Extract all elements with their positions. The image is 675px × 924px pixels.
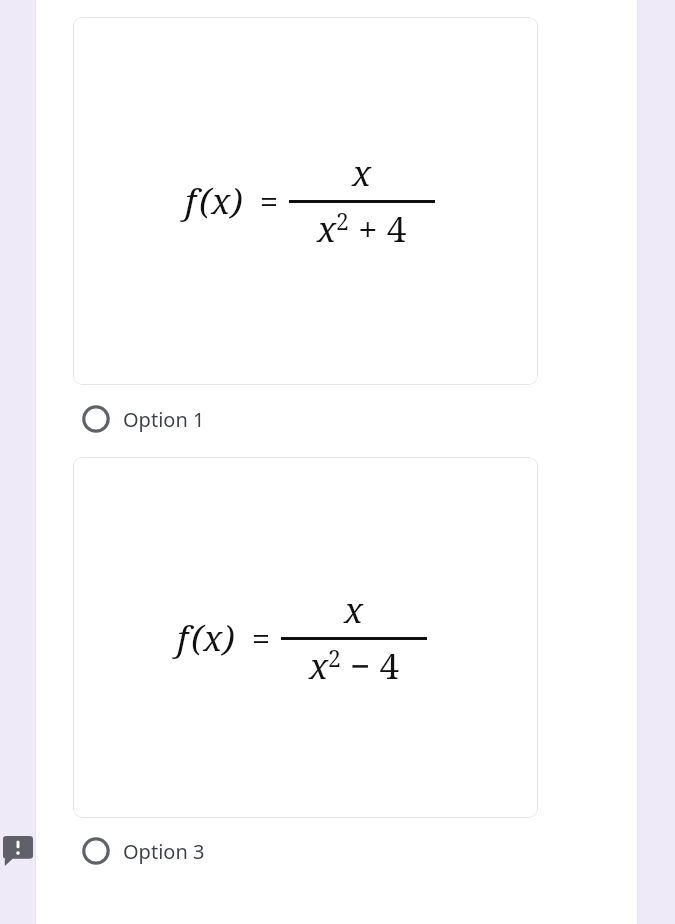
button[interactable]: Option 3 bbox=[36, 824, 675, 878]
other: Add comment bbox=[3, 836, 33, 866]
staticText: x bbox=[344, 586, 364, 634]
staticText: x2 + 4 bbox=[317, 205, 407, 253]
staticText: x bbox=[352, 149, 372, 197]
staticText: f (x) = bbox=[177, 614, 271, 662]
staticText: Option 1 bbox=[123, 406, 205, 433]
staticText: f (x) = bbox=[185, 177, 279, 225]
button[interactable]: f (x) = bbox=[73, 17, 538, 385]
staticText: x2 − 4 bbox=[309, 642, 399, 690]
button[interactable]: Option 1 bbox=[36, 392, 675, 446]
button[interactable]: f (x) = bbox=[73, 457, 538, 818]
button[interactable]: Add comment bbox=[1, 834, 35, 868]
staticText: Option 3 bbox=[123, 838, 205, 865]
